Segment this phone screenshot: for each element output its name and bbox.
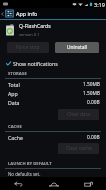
staticText: Show notifications	[13, 60, 58, 67]
button[interactable]: Clear data	[58, 109, 99, 120]
staticText: Q-FlashCards	[19, 23, 51, 30]
staticText: App	[8, 90, 18, 97]
button[interactable]: Clear cache	[58, 143, 99, 154]
staticText: Uninstall	[67, 44, 87, 51]
button[interactable]: Force stop	[7, 42, 49, 53]
staticText: Clear cache	[66, 145, 92, 152]
button[interactable]: Navigate up	[0, 8, 14, 19]
staticText: 0.00B	[87, 99, 100, 106]
staticText: App info	[16, 10, 38, 17]
staticText: CACHE	[8, 124, 22, 130]
button[interactable]: Show notifications	[0, 58, 106, 69]
staticText: No defaults set.	[8, 171, 41, 177]
button[interactable]: Home	[36, 177, 71, 190]
staticText: Cache	[8, 134, 23, 141]
staticText: Total	[8, 81, 20, 88]
button[interactable]: Uninstall	[55, 42, 99, 53]
staticText: 1.50MB	[83, 81, 100, 88]
staticText: LAUNCH BY DEFAULT	[8, 161, 52, 167]
staticText: 3:19	[94, 1, 105, 8]
staticText: 1.50MB	[83, 90, 100, 97]
staticText: STORAGE	[8, 71, 27, 77]
staticText: Force stop	[16, 44, 40, 51]
staticText: Data	[8, 99, 20, 106]
button[interactable]: Recent apps	[71, 177, 106, 190]
staticText: 0.00B	[87, 134, 100, 141]
staticText: Clear data	[67, 111, 90, 118]
button[interactable]: Back	[0, 177, 36, 190]
staticText: version 0.1	[19, 32, 40, 37]
